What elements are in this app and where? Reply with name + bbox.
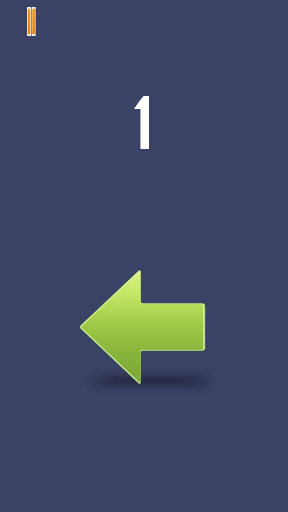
button[interactable]: Move left	[78, 268, 206, 386]
button[interactable]: Pause	[0, 0, 52, 52]
